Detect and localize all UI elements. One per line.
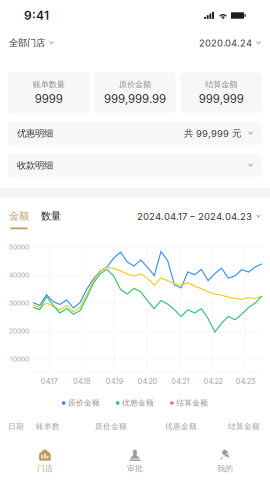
staticText: 审批 <box>127 463 143 474</box>
staticText: 9999 <box>35 92 63 106</box>
button[interactable]: 我的 <box>180 444 270 478</box>
staticText: 原价金额 <box>95 422 127 431</box>
staticText: 共 99,999 元 <box>184 128 241 139</box>
staticText: 结算金额 <box>228 422 260 431</box>
staticText: 账单数 <box>36 422 60 431</box>
staticText: 04.17 <box>41 377 58 386</box>
staticText: 999,999.99 <box>104 92 166 106</box>
staticText: 04.21 <box>171 377 189 386</box>
staticText: 全部门店 <box>9 37 45 49</box>
staticText: 优惠明细 <box>17 128 53 139</box>
staticText: 我的 <box>217 463 233 474</box>
staticText: 数量 <box>41 210 61 222</box>
staticText: 优惠金额 <box>122 398 154 408</box>
staticText: 2020.04.24 <box>199 37 252 49</box>
staticText: 金额 <box>9 210 29 222</box>
staticText: 20000 <box>9 327 29 335</box>
button[interactable]: 门店 <box>0 444 90 478</box>
button[interactable]: 2024.04.17 – 2024.04.23 <box>137 200 261 222</box>
button[interactable]: 全部门店 <box>9 33 54 53</box>
staticText: 2024.04.17 – 2024.04.23 <box>137 211 252 222</box>
staticText: 优惠金额 <box>165 422 197 431</box>
button[interactable]: 数量 <box>29 200 61 229</box>
staticText: 原价金额 <box>68 398 100 408</box>
staticText: 04.23 <box>236 377 256 386</box>
button[interactable]: 优惠明细 <box>8 122 262 145</box>
button[interactable]: 收款明细 <box>8 154 262 177</box>
staticText: 日期 <box>8 422 24 431</box>
staticText: 结算金额 <box>205 79 237 90</box>
staticText: 04.19 <box>106 377 124 386</box>
button[interactable]: 金额 <box>9 200 29 229</box>
button[interactable]: 2020.04.24 <box>199 33 261 53</box>
staticText: 账单数量 <box>33 79 65 90</box>
staticText: 04.18 <box>73 377 91 386</box>
staticText: 收款明细 <box>17 160 53 171</box>
button[interactable]: 审批 <box>90 444 180 478</box>
staticText: 9:41 <box>24 8 49 23</box>
staticText: 结算金额 <box>176 398 208 408</box>
staticText: 10000 <box>10 355 29 363</box>
staticText: 原价金额 <box>119 79 151 90</box>
staticText: 999,999 <box>199 92 244 106</box>
staticText: 40000 <box>9 271 29 279</box>
staticText: 50000 <box>9 243 29 251</box>
staticText: 04.22 <box>203 377 222 386</box>
staticText: 30000 <box>9 299 29 307</box>
staticText: 门店 <box>37 463 53 474</box>
staticText: 04.20 <box>137 377 157 386</box>
